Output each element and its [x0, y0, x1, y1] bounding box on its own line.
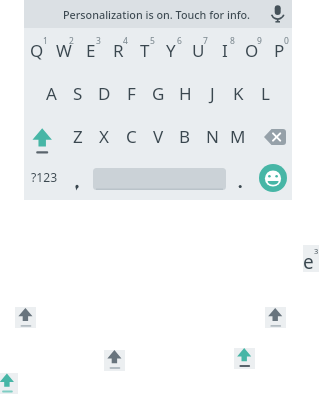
staticText: 9	[257, 35, 262, 47]
button[interactable]	[225, 114, 252, 157]
staticText: R	[113, 39, 124, 62]
staticText: C	[126, 125, 137, 148]
button[interactable]	[64, 71, 91, 114]
staticText: 3	[314, 246, 319, 256]
button[interactable]	[145, 114, 172, 157]
button[interactable]	[78, 28, 105, 71]
button[interactable]	[265, 307, 286, 328]
button[interactable]	[198, 71, 225, 114]
staticText: T	[140, 39, 150, 62]
staticText: X	[99, 125, 109, 148]
button[interactable]	[64, 114, 91, 157]
button[interactable]	[93, 168, 226, 190]
staticText: 3	[96, 35, 101, 47]
staticText: V	[153, 125, 164, 148]
staticText: F	[127, 82, 136, 105]
staticText: 1	[43, 35, 48, 47]
button[interactable]	[238, 28, 265, 71]
staticText: L	[261, 82, 270, 105]
staticText: G	[152, 82, 165, 105]
staticText: 2	[69, 35, 74, 47]
button[interactable]	[252, 114, 292, 157]
button[interactable]	[266, 2, 290, 26]
button[interactable]	[252, 71, 279, 114]
staticText: S	[73, 82, 83, 105]
staticText: Q	[30, 39, 44, 62]
button[interactable]	[24, 156, 64, 200]
staticText: Personalization is on. Touch for info.	[63, 7, 251, 22]
staticText: P	[274, 39, 285, 62]
button[interactable]	[234, 348, 255, 369]
button[interactable]	[225, 71, 252, 114]
button[interactable]	[91, 71, 118, 114]
button[interactable]	[212, 28, 239, 71]
staticText: B	[179, 125, 191, 148]
button[interactable]	[201, 156, 228, 200]
staticText: N	[206, 125, 219, 148]
button[interactable]	[91, 114, 118, 157]
staticText: 7	[203, 35, 208, 47]
staticText: E	[86, 39, 96, 62]
button[interactable]	[24, 114, 64, 157]
staticText: 8	[230, 35, 235, 47]
button[interactable]	[265, 28, 292, 71]
button[interactable]	[24, 28, 51, 71]
button[interactable]	[64, 156, 91, 200]
button[interactable]	[198, 114, 225, 157]
staticText: O	[245, 39, 259, 62]
staticText: e	[303, 249, 314, 275]
staticText: D	[98, 82, 111, 105]
button[interactable]	[185, 28, 212, 71]
button[interactable]	[104, 350, 125, 371]
staticText: W	[56, 39, 72, 62]
staticText: M	[230, 125, 246, 148]
staticText: 6	[177, 35, 182, 47]
staticText: Z	[73, 125, 83, 148]
staticText: U	[192, 39, 205, 62]
staticText: ?123	[31, 169, 58, 186]
staticText: A	[46, 82, 57, 105]
staticText: I	[222, 39, 228, 62]
button[interactable]	[158, 28, 185, 71]
button[interactable]	[303, 245, 319, 272]
button[interactable]	[51, 28, 78, 71]
button[interactable]	[37, 71, 64, 114]
button[interactable]	[118, 114, 145, 157]
staticText: J	[210, 82, 215, 105]
staticText: Y	[166, 39, 176, 62]
button[interactable]	[0, 373, 18, 394]
button[interactable]	[259, 164, 287, 192]
staticText: H	[179, 82, 192, 105]
button[interactable]	[24, 0, 292, 28]
button[interactable]	[118, 71, 145, 114]
staticText: 4	[123, 35, 128, 47]
button[interactable]	[171, 71, 198, 114]
staticText: K	[233, 82, 244, 105]
button[interactable]	[171, 114, 198, 157]
staticText: 5	[150, 35, 155, 47]
button[interactable]	[15, 307, 36, 328]
staticText: 0	[284, 35, 289, 47]
button[interactable]	[131, 28, 158, 71]
button[interactable]	[104, 28, 131, 71]
button[interactable]	[145, 71, 172, 114]
